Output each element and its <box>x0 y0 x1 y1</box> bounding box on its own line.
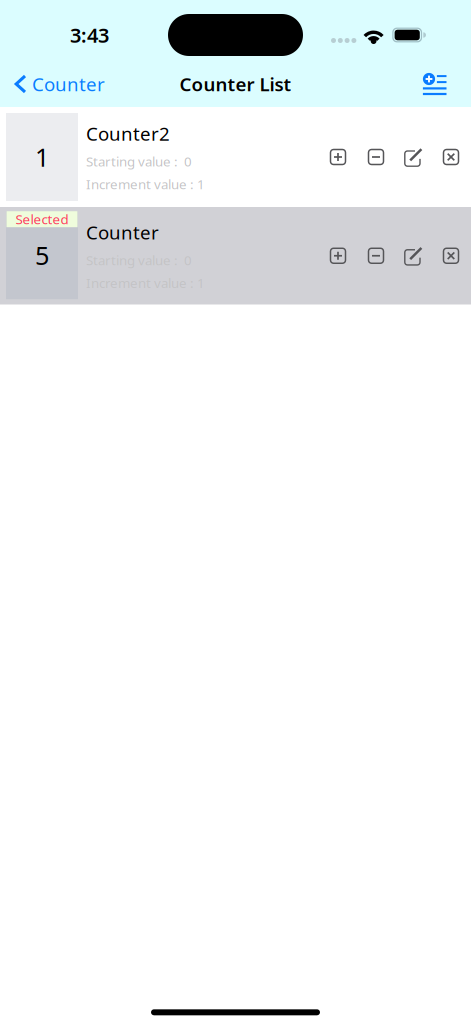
button[interactable]: 5 <box>0 207 471 304</box>
staticText: Selected <box>15 210 68 228</box>
staticText: Increment value : 1 <box>86 274 205 292</box>
staticText: 3:43 <box>70 22 109 48</box>
staticText: Starting value : 0 <box>86 152 192 170</box>
button[interactable]: Delete <box>433 245 469 267</box>
staticText: 1 <box>35 140 49 174</box>
staticText: Counter2 <box>86 121 170 146</box>
button[interactable]: Decrement <box>357 245 395 267</box>
button[interactable]: Counter <box>0 65 113 103</box>
button[interactable]: Increment <box>319 245 357 267</box>
button[interactable]: Delete <box>433 146 469 168</box>
button[interactable]: 1 <box>0 107 471 207</box>
staticText: 5 <box>35 238 49 272</box>
staticText: Increment value : 1 <box>86 175 205 193</box>
button[interactable]: Edit <box>395 146 433 168</box>
staticText: Counter <box>86 220 159 244</box>
button[interactable]: Decrement <box>357 146 395 168</box>
staticText: Starting value : 0 <box>86 251 192 269</box>
staticText: Counter List <box>179 72 291 96</box>
button[interactable]: Add counter <box>413 66 471 102</box>
staticText: Counter <box>32 72 105 96</box>
button[interactable]: Edit <box>395 245 433 267</box>
button[interactable]: Increment <box>319 146 357 168</box>
